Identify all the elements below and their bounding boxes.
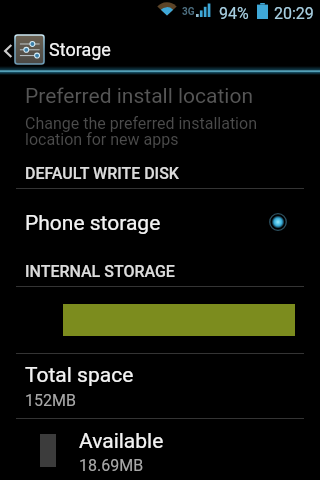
- button[interactable]: Phone storage: [0, 192, 320, 246]
- staticText: Change the preferred installation locati…: [25, 114, 257, 149]
- staticText: 152MB: [25, 391, 76, 410]
- staticText: Total space: [25, 363, 134, 388]
- staticText: INTERNAL STORAGE: [25, 262, 175, 281]
- other: Navigate up: [4, 45, 12, 57]
- button[interactable]: Preferred install location: [0, 76, 320, 150]
- staticText: Phone storage: [25, 211, 161, 236]
- staticText: 94%: [219, 4, 249, 23]
- staticText: Preferred install location: [25, 84, 254, 109]
- button[interactable]: [0, 25, 120, 70]
- staticText: 20:29: [274, 4, 314, 23]
- staticText: 18.69MB: [79, 456, 144, 475]
- staticText: DEFAULT WRITE DISK: [25, 164, 179, 183]
- staticText: 3G: [182, 6, 195, 18]
- button[interactable]: Total space: [0, 356, 320, 414]
- button[interactable]: Available: [0, 422, 320, 480]
- staticText: Available: [79, 429, 164, 454]
- staticText: Storage: [49, 39, 111, 60]
